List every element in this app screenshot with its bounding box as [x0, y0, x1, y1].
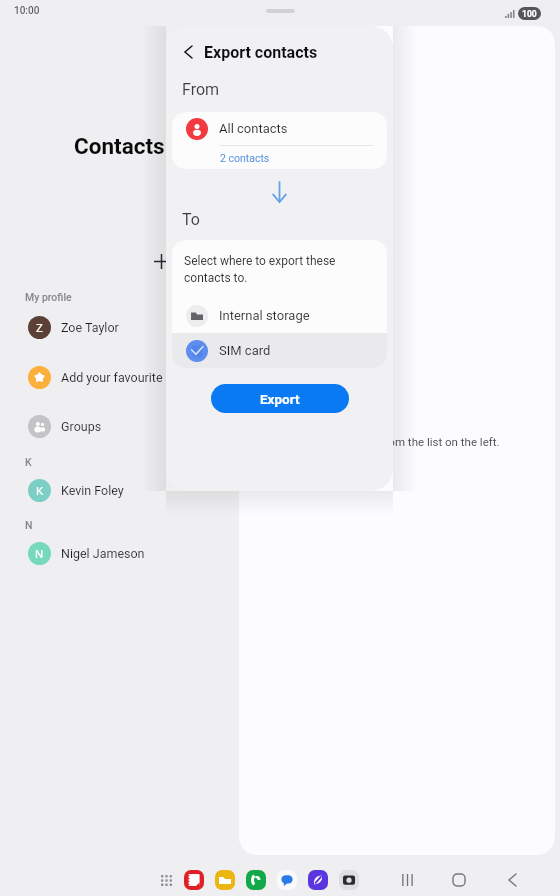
button[interactable]: Internal storage	[172, 298, 387, 333]
staticText: From	[182, 80, 220, 99]
staticText: Nigel Jameson	[61, 546, 145, 561]
staticText: Select where to export these contacts to…	[184, 254, 363, 285]
staticText: K	[36, 484, 44, 497]
button[interactable]: Add your favourite contacts	[0, 353, 239, 401]
staticText: SIM card	[219, 343, 271, 358]
staticText: Add your favourite contacts	[61, 370, 215, 385]
button[interactable]: Camera	[339, 870, 359, 890]
button[interactable]: Messages	[277, 870, 297, 890]
staticText: 100	[522, 9, 537, 19]
button[interactable]: All contacts	[172, 112, 387, 169]
staticText: To	[182, 210, 200, 229]
button[interactable]: Apps	[156, 870, 176, 890]
staticText: Export contacts	[204, 43, 318, 62]
button[interactable]: Internet	[308, 870, 328, 890]
button[interactable]: Export	[211, 384, 349, 413]
button[interactable]: Home	[445, 866, 473, 894]
button[interactable]: Create contact	[146, 246, 176, 276]
button[interactable]: Back	[498, 866, 526, 894]
staticText: 2 contacts	[220, 152, 270, 164]
button[interactable]: Recents	[393, 866, 421, 894]
staticText: Export	[260, 391, 300, 407]
staticText: K	[25, 456, 32, 468]
staticText: All contacts	[219, 121, 288, 136]
staticText: Kevin Foley	[61, 483, 124, 498]
button[interactable]: Back	[176, 40, 200, 64]
staticText: My profile	[25, 291, 72, 303]
staticText: Zoe Taylor	[61, 320, 119, 335]
button[interactable]: Samsung Notes	[184, 870, 204, 890]
staticText: N	[25, 519, 33, 531]
staticText: Groups	[61, 419, 102, 434]
staticText: Select a contact from the list on the le…	[295, 435, 500, 448]
button[interactable]: Phone	[246, 870, 266, 890]
button[interactable]: Groups	[0, 402, 239, 450]
button[interactable]: Z	[0, 303, 239, 351]
button[interactable]: K	[0, 466, 239, 514]
staticText: Internal storage	[219, 308, 310, 323]
staticText: Contacts	[74, 133, 165, 159]
staticText: 10:00	[14, 5, 40, 17]
staticText: N	[35, 547, 44, 560]
staticText: Z	[36, 321, 43, 334]
button[interactable]: SIM card	[172, 333, 387, 368]
button[interactable]: My Files	[215, 870, 235, 890]
button[interactable]: N	[0, 529, 239, 577]
